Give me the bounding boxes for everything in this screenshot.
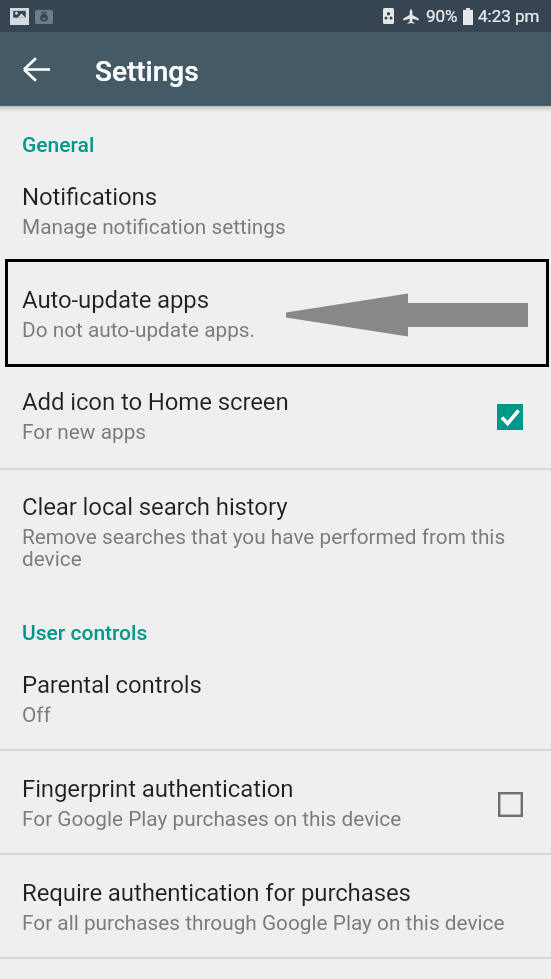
staticText: Off <box>22 703 51 727</box>
button[interactable]: Back <box>12 44 62 94</box>
button[interactable]: Add icon to Home screen <box>0 388 551 444</box>
button[interactable]: Fingerprint authentication toggle <box>489 783 531 825</box>
staticText: Do not auto-update apps. <box>22 318 256 342</box>
staticText: Settings <box>95 55 199 88</box>
staticText: 4:23 pm <box>478 6 540 26</box>
staticText: Parental controls <box>22 671 202 699</box>
staticText: For all purchases through Google Play on… <box>22 911 505 935</box>
staticText: Fingerprint authentication <box>22 775 294 803</box>
staticText: 90% <box>426 6 458 26</box>
button[interactable]: Auto-update apps <box>5 259 549 367</box>
staticText: General <box>22 133 95 158</box>
button[interactable]: Notifications <box>0 183 551 239</box>
button[interactable]: Add icon to Home screen toggle <box>489 396 531 438</box>
staticText: For Google Play purchases on this device <box>22 807 402 831</box>
staticText: Remove searches that you have performed … <box>22 525 535 571</box>
staticText: Clear local search history <box>22 493 288 521</box>
button[interactable]: Require authentication for purchases <box>0 879 551 935</box>
staticText: For new apps <box>22 420 147 444</box>
button[interactable]: Fingerprint authentication <box>0 775 551 831</box>
staticText: Require authentication for purchases <box>22 879 411 907</box>
button[interactable]: Parental controls <box>0 671 551 727</box>
staticText: Add icon to Home screen <box>22 388 289 416</box>
button[interactable]: Clear local search history <box>0 493 551 571</box>
staticText: User controls <box>22 621 148 646</box>
staticText: Notifications <box>22 183 157 211</box>
staticText: Auto-update apps <box>22 286 209 314</box>
staticText: Manage notification settings <box>22 215 286 239</box>
